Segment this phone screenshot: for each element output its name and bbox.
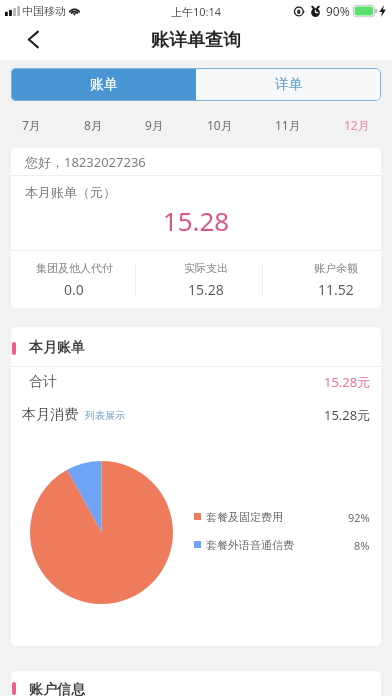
staticText: 中国移动 bbox=[22, 4, 66, 18]
staticText: 10月 bbox=[207, 117, 233, 133]
button[interactable]: 账户余额 bbox=[273, 251, 381, 308]
staticText: 7月 bbox=[22, 117, 41, 133]
staticText: 套餐外语音通信费 bbox=[206, 538, 294, 550]
staticText: 列表展示 bbox=[85, 409, 125, 422]
staticText: 本月账单 bbox=[29, 339, 85, 357]
staticText: 合计 bbox=[29, 373, 57, 391]
button[interactable]: Back bbox=[17, 24, 49, 54]
staticText: 11月 bbox=[275, 117, 301, 133]
staticText: 15.28 bbox=[188, 280, 224, 299]
button[interactable]: 实际支出 bbox=[143, 251, 269, 308]
button[interactable]: 集团及他人代付 bbox=[11, 251, 137, 308]
staticText: 0.0 bbox=[64, 280, 84, 299]
button[interactable]: 合计 bbox=[29, 367, 371, 397]
staticText: 实际支出 bbox=[184, 261, 228, 275]
staticText: 账单 bbox=[90, 76, 118, 94]
staticText: 账户余额 bbox=[314, 261, 358, 275]
staticText: 15.28元 bbox=[324, 406, 371, 424]
button[interactable]: 12月 bbox=[344, 110, 370, 140]
staticText: 本月消费 bbox=[22, 406, 78, 424]
staticText: 上午10:14 bbox=[171, 4, 222, 19]
staticText: 集团及他人代付 bbox=[36, 261, 113, 275]
button[interactable]: 本月消费 bbox=[22, 397, 371, 433]
staticText: 本月账单（元） bbox=[25, 184, 116, 200]
staticText: 详单 bbox=[275, 76, 303, 94]
staticText: 15.28 bbox=[11, 203, 381, 238]
staticText: 15.28元 bbox=[324, 373, 371, 391]
staticText: 您好，18232027236 bbox=[25, 153, 146, 171]
staticText: 账户信息 bbox=[29, 681, 85, 696]
button[interactable]: 10月 bbox=[207, 110, 233, 140]
staticText: 12月 bbox=[344, 117, 370, 133]
button[interactable]: 7月 bbox=[22, 110, 41, 140]
staticText: 11.52 bbox=[318, 280, 354, 299]
staticText: 92% bbox=[348, 510, 370, 522]
button[interactable]: 9月 bbox=[145, 110, 164, 140]
button[interactable]: 账单 bbox=[11, 68, 196, 101]
staticText: 9月 bbox=[145, 117, 164, 133]
staticText: 8月 bbox=[84, 117, 103, 133]
staticText: 账详单查询 bbox=[151, 29, 241, 52]
staticText: 8% bbox=[354, 538, 370, 550]
staticText: 90% bbox=[326, 3, 350, 19]
button[interactable]: 详单 bbox=[196, 68, 381, 101]
staticText: 套餐及固定费用 bbox=[206, 510, 283, 522]
button[interactable]: 11月 bbox=[275, 110, 301, 140]
button[interactable]: 8月 bbox=[84, 110, 103, 140]
